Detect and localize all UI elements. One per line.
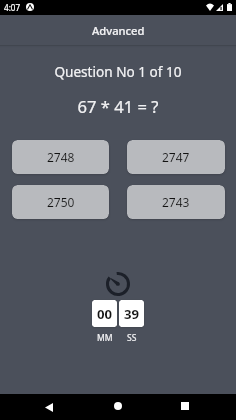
staticText: Advanced <box>92 23 145 38</box>
staticText: 2750 <box>47 194 75 210</box>
staticText: 2748 <box>47 149 75 165</box>
button[interactable]: 2747 <box>127 140 225 174</box>
button[interactable]: Home <box>105 393 131 419</box>
other: Timer <box>106 272 130 296</box>
staticText: 2743 <box>162 194 190 210</box>
staticText: 4:07 <box>4 2 21 13</box>
staticText: MM <box>97 332 113 344</box>
button[interactable]: 2748 <box>12 140 109 174</box>
staticText: 2747 <box>162 149 190 165</box>
staticText: Question No 1 of 10 <box>0 62 236 81</box>
button[interactable]: 2743 <box>127 185 225 219</box>
staticText: SS <box>127 332 137 344</box>
button[interactable]: Back <box>36 394 62 420</box>
staticText: 39 <box>124 305 140 323</box>
button[interactable]: 2750 <box>12 185 109 219</box>
staticText: 67 * 41 = ? <box>0 95 236 118</box>
staticText: 00 <box>97 305 113 323</box>
button[interactable]: Recent apps <box>172 393 198 419</box>
